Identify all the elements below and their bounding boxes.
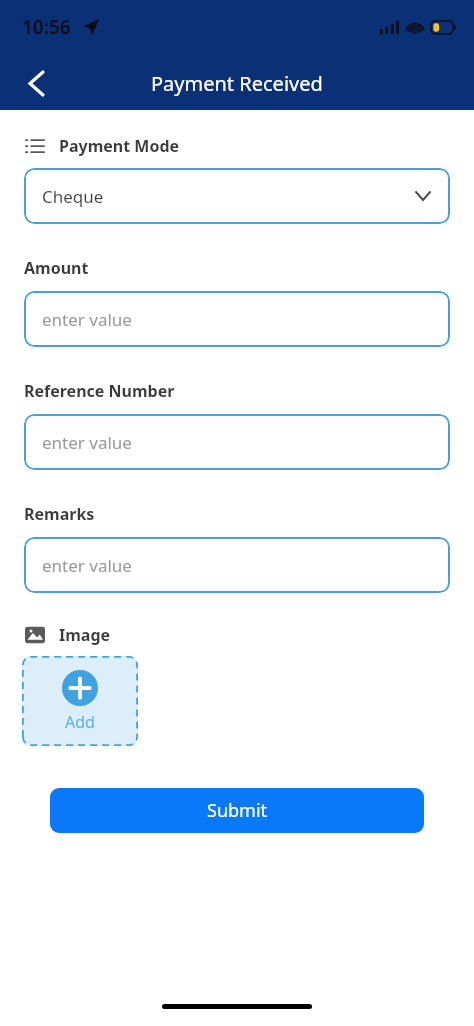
staticText: 10:56 bbox=[22, 14, 71, 40]
button[interactable]: Cheque bbox=[24, 168, 450, 224]
button[interactable]: enter value bbox=[24, 291, 450, 347]
button[interactable]: enter value bbox=[24, 414, 450, 470]
staticText: Remarks bbox=[24, 503, 95, 525]
button[interactable]: Submit bbox=[50, 788, 424, 833]
staticText: enter value bbox=[42, 431, 132, 454]
button[interactable]: Add image bbox=[22, 656, 138, 746]
staticText: Cheque bbox=[42, 185, 104, 208]
staticText: Add bbox=[65, 711, 95, 733]
staticText: enter value bbox=[42, 554, 132, 577]
staticText: Reference Number bbox=[24, 380, 175, 402]
staticText: enter value bbox=[42, 308, 132, 331]
staticText: Payment Mode bbox=[59, 135, 180, 157]
staticText: Amount bbox=[24, 257, 89, 279]
button[interactable]: enter value bbox=[24, 537, 450, 593]
staticText: Payment Received bbox=[151, 70, 323, 97]
staticText: Image bbox=[59, 624, 111, 646]
button[interactable]: Back bbox=[14, 61, 58, 105]
staticText: Submit bbox=[207, 798, 268, 823]
